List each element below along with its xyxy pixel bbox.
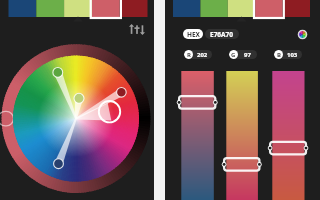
staticText: B: [277, 51, 281, 59]
staticText: 202: [197, 51, 208, 59]
button[interactable]: Color wheel: [298, 30, 307, 39]
staticText: 103: [287, 51, 298, 59]
button[interactable]: HEX: [183, 29, 239, 39]
staticText: 97: [244, 51, 251, 59]
staticText: R: [187, 51, 191, 59]
button[interactable]: Adjust sliders: [129, 24, 145, 35]
staticText: HEX: [187, 30, 200, 39]
button[interactable]: R: [184, 50, 212, 59]
button[interactable]: B: [274, 50, 302, 59]
staticText: E76A70: [210, 30, 234, 39]
staticText: G: [231, 51, 236, 59]
button[interactable]: G: [229, 50, 257, 59]
